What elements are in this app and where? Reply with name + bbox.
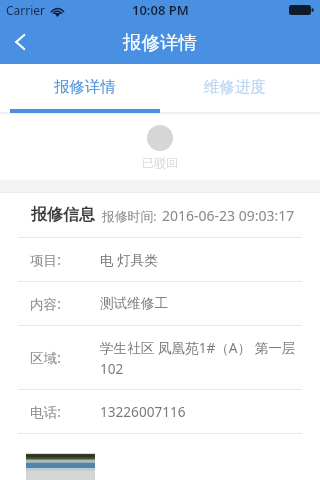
button[interactable]: 报修图片 xyxy=(26,453,95,480)
staticText: 报修详情 xyxy=(123,31,197,54)
staticText: 电话: xyxy=(30,402,61,421)
button[interactable]: 维修进度 xyxy=(160,64,310,110)
staticText: 项目: xyxy=(30,250,61,269)
staticText: 内容: xyxy=(30,294,61,313)
staticText: 区域: xyxy=(30,348,61,367)
staticText: 报修信息 xyxy=(31,205,95,225)
staticText: 2016-06-23 09:03:17 xyxy=(162,206,295,225)
staticText: Carrier xyxy=(6,2,46,18)
staticText: 报修详情 xyxy=(54,77,116,97)
staticText: 测试维修工 xyxy=(100,295,168,312)
button[interactable]: Back xyxy=(0,20,44,64)
staticText: 维修进度 xyxy=(204,77,266,97)
staticText: 13226007116 xyxy=(100,402,186,421)
staticText: 已驳回 xyxy=(142,155,178,170)
staticText: 学生社区 凤凰苑1#（A） 第一层 102 xyxy=(100,338,298,378)
staticText: 报修时间: xyxy=(102,207,157,224)
staticText: 10:08 PM xyxy=(132,1,189,19)
staticText: 电 灯具类 xyxy=(100,250,158,269)
button[interactable]: 报修详情 xyxy=(10,64,160,110)
